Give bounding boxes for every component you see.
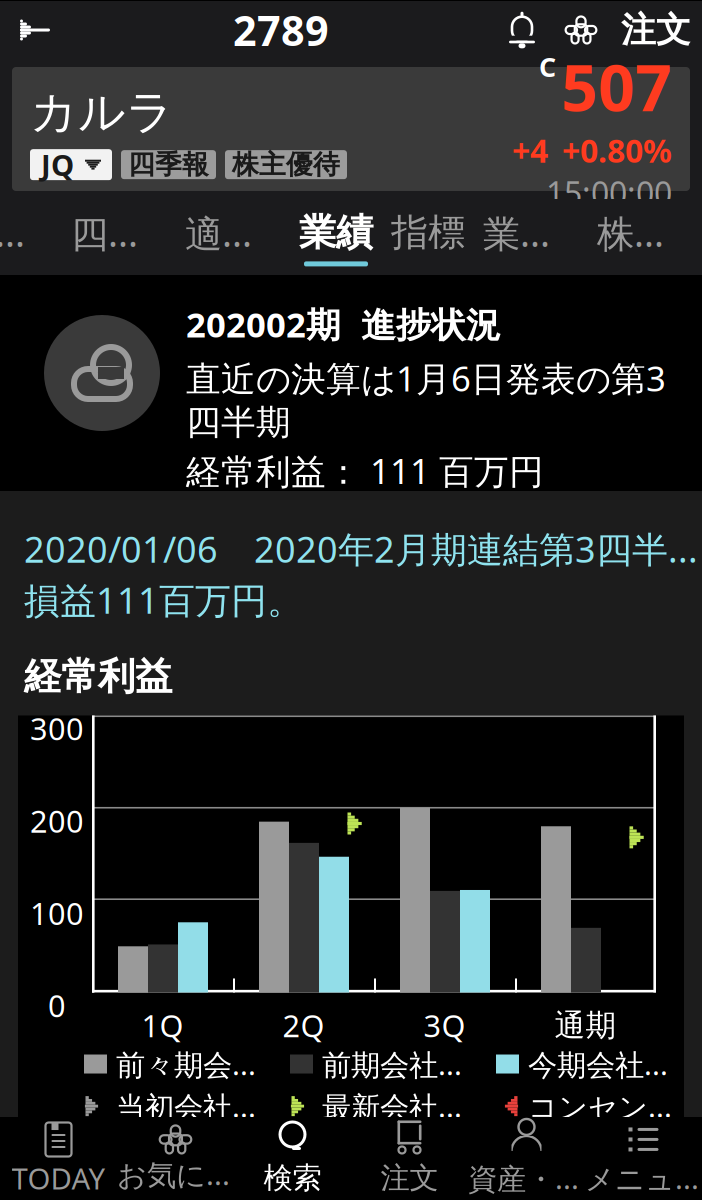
button[interactable]: 適時開示	[176, 199, 290, 275]
staticText: +4	[512, 129, 548, 171]
staticText: +0.80%	[562, 129, 672, 171]
staticText: 100	[30, 893, 84, 933]
staticText: 資産・照会	[468, 1158, 585, 1197]
staticText: 当初会社予想	[116, 1087, 264, 1126]
staticText: 業績	[299, 210, 373, 255]
staticText: 200	[30, 800, 84, 841]
staticText: 検索	[263, 1160, 321, 1196]
staticText: 直近の決算は1月6日発表の第3四半期	[186, 355, 666, 444]
staticText: 15:00:00	[546, 171, 672, 214]
button[interactable]: 戻る	[0, 1, 70, 59]
staticText: 四季報	[128, 148, 209, 181]
button[interactable]: 資産・照会	[468, 1117, 585, 1199]
staticText: カルラ	[30, 84, 174, 141]
staticText: 今期会社実績	[528, 1044, 676, 1084]
button[interactable]: アラート設定	[492, 1, 552, 59]
staticText: 指標	[391, 210, 465, 255]
button[interactable]: 業績	[290, 199, 382, 275]
staticText: 通期	[554, 1007, 616, 1044]
staticText: 最新会社予想	[322, 1087, 470, 1126]
staticText: 注文	[380, 1160, 438, 1196]
staticText: 株主優待	[597, 208, 693, 257]
staticText: 507	[561, 44, 672, 129]
staticText: 経常利益	[24, 654, 172, 699]
staticText: 注文	[621, 9, 691, 51]
staticText: C	[539, 49, 556, 84]
staticText: 前期会社実績	[322, 1044, 470, 1084]
button[interactable]: 検索	[234, 1117, 351, 1199]
staticText: 2020/01/06 2020年2月期連結第3四半期(累計)、経常	[24, 525, 702, 573]
button[interactable]: 2020/01/06 2020年2月期連結第3四半期(累計)、経常	[0, 491, 702, 624]
staticText: 2Q	[282, 1005, 324, 1046]
button[interactable]: 株主優待	[588, 199, 702, 275]
staticText: JQ	[41, 145, 74, 184]
button[interactable]: TODAY	[0, 1117, 117, 1199]
staticText: TODAY	[11, 1158, 105, 1197]
staticText: 経常利益： 111 百万円	[186, 448, 544, 494]
staticText: お気に入り	[117, 1154, 234, 1193]
button[interactable]: JQ	[30, 149, 112, 180]
button[interactable]: お気に入りに追加	[552, 1, 610, 59]
staticText: 1Q	[141, 1005, 183, 1046]
staticText: 3Q	[423, 1005, 465, 1046]
staticText: 株主優待	[232, 148, 340, 181]
button[interactable]: ニュース	[0, 199, 62, 275]
staticText: 四季報	[71, 208, 167, 257]
staticText: 2789	[233, 3, 329, 57]
button[interactable]: 四季報	[121, 150, 216, 179]
button[interactable]: メニュー	[585, 1117, 702, 1199]
button[interactable]: 注文	[351, 1117, 468, 1199]
button[interactable]: 四季報	[62, 199, 176, 275]
staticText: 300	[30, 708, 84, 749]
button[interactable]: 株主優待	[225, 150, 347, 179]
staticText: コンセンサス予想	[528, 1087, 676, 1126]
staticText: 0	[48, 985, 66, 1026]
button[interactable]: 注文	[610, 1, 702, 59]
staticText: 前々期会社実績	[116, 1044, 264, 1084]
staticText: 対会社予想進捗率：	[186, 499, 511, 542]
staticText: メニュー	[585, 1158, 702, 1197]
staticText: 業績予測	[483, 208, 579, 257]
button[interactable]: 指標	[382, 199, 474, 275]
button[interactable]: カルラ	[0, 59, 702, 199]
button[interactable]: お気に入り	[117, 1117, 234, 1199]
staticText: 202002期 進捗状況	[186, 301, 501, 347]
staticText: 損益111百万円。	[24, 576, 303, 624]
staticText: ニュース	[0, 208, 53, 257]
staticText: 適時開示	[185, 208, 281, 257]
button[interactable]: 業績予測	[474, 199, 588, 275]
staticText: 69.4%	[511, 498, 609, 544]
